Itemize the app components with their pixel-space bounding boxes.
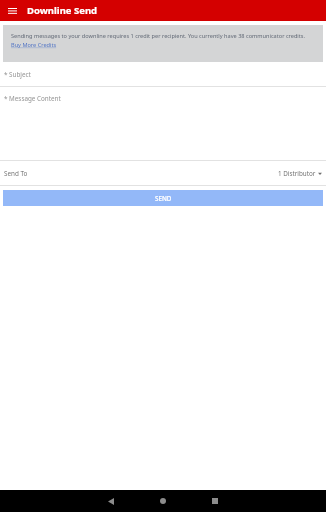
button[interactable]: SEND <box>3 190 323 206</box>
staticText: Sending messages to your downline requir… <box>11 32 306 40</box>
staticText: Send To <box>4 169 28 178</box>
button[interactable]: Home <box>152 490 174 512</box>
staticText: * Message Content <box>4 94 61 103</box>
button[interactable]: Buy More Credits <box>11 41 57 49</box>
staticText: SEND <box>155 194 172 203</box>
button[interactable]: Recent apps <box>204 490 226 512</box>
staticText: 1 Distributor <box>278 169 316 178</box>
button[interactable]: * Message Content <box>0 87 326 160</box>
button[interactable]: Open navigation menu <box>5 4 19 18</box>
button[interactable]: Back <box>100 490 122 512</box>
button[interactable]: Send To <box>0 161 326 185</box>
staticText: * Subject <box>4 70 31 79</box>
button[interactable]: * Subject <box>0 62 326 86</box>
staticText: Downline Send <box>27 4 98 17</box>
staticText: Buy More Credits <box>11 41 57 49</box>
